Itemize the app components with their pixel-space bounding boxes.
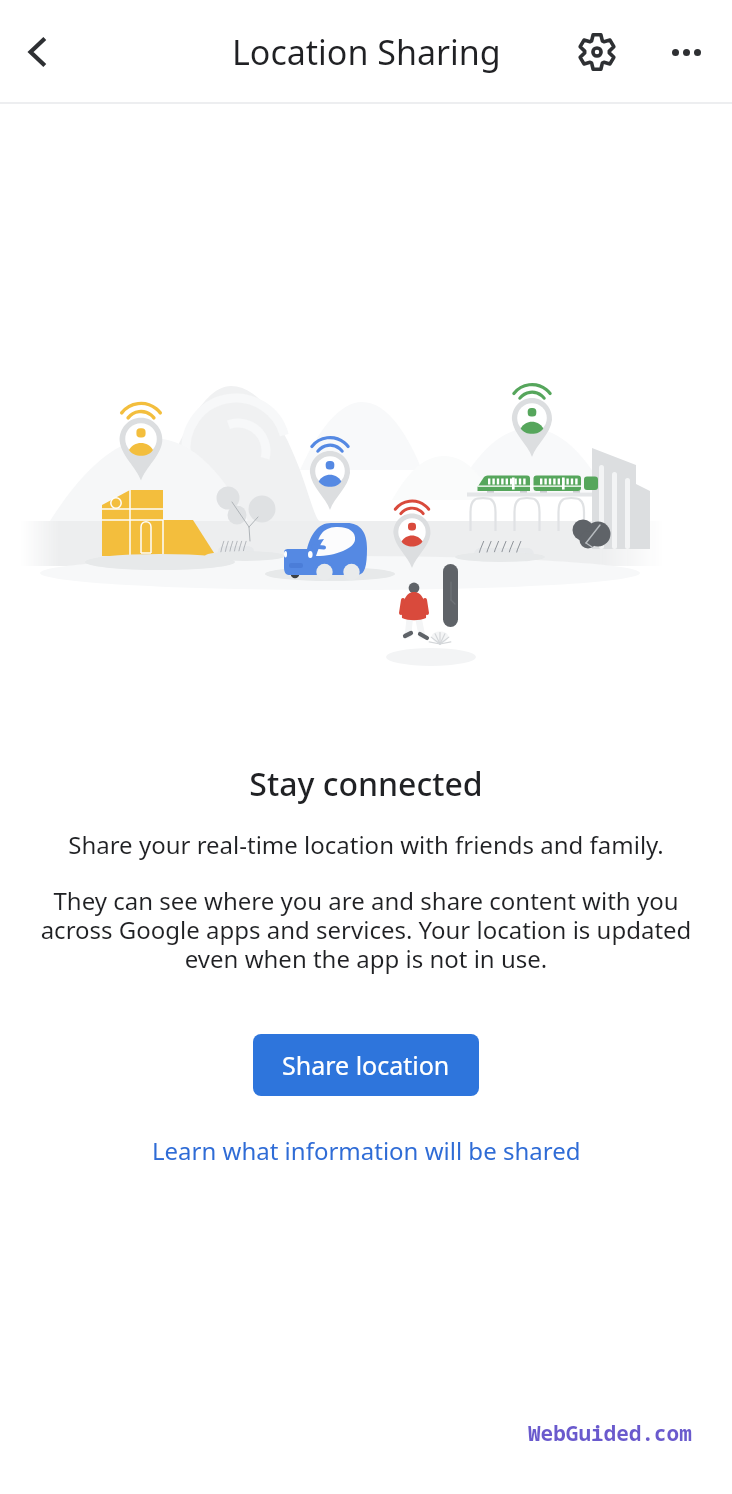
staticText: Learn what information will be shared xyxy=(152,1134,581,1167)
staticText: Stay connected xyxy=(249,762,483,806)
staticText: Share your real-time location with frien… xyxy=(68,828,664,861)
staticText: WebGuided.com xyxy=(528,1419,692,1448)
button[interactable]: More options xyxy=(648,14,724,90)
button[interactable]: Learn what information will be shared xyxy=(140,1130,593,1171)
button[interactable]: Settings xyxy=(559,14,635,90)
staticText: Location Sharing xyxy=(232,29,501,75)
button[interactable]: Back xyxy=(0,14,76,90)
staticText: Share location xyxy=(282,1048,450,1082)
staticText: They can see where you are and share con… xyxy=(34,884,698,975)
button[interactable]: Share location xyxy=(253,1034,479,1096)
